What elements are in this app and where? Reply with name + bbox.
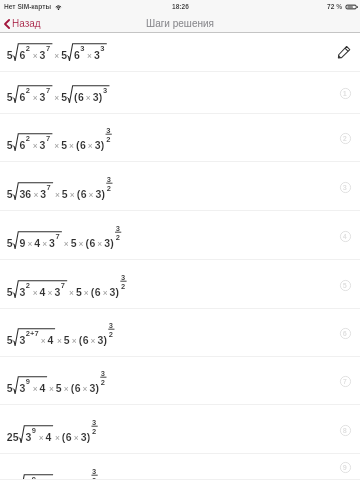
staticText: 2 [343,135,347,142]
button[interactable]: Step 2 details [337,130,353,146]
button[interactable]: Step 9 details [0,454,360,480]
button[interactable]: Edit expression [0,33,360,72]
button[interactable]: Step 5 details [0,260,360,309]
staticText: 6 [343,330,347,337]
button[interactable]: Step 3 details [0,162,360,211]
button[interactable]: Step 7 details [337,373,353,389]
button[interactable]: Step 8 details [337,422,353,438]
staticText: 7 [343,378,347,385]
staticText: 8 [343,427,347,434]
button[interactable]: Step 1 details [337,85,353,101]
staticText: 5 [343,282,347,289]
staticText: Шаги решения [146,18,214,29]
staticText: 4 [343,233,347,240]
staticText: Нет SIM-карты [4,3,52,10]
button[interactable]: Step 3 details [337,179,353,195]
button[interactable]: Назад [0,15,47,32]
staticText: 1 [343,90,347,97]
button[interactable]: Step 2 details [0,114,360,162]
staticText: Назад [12,18,41,29]
staticText: 18:26 [172,3,189,10]
button[interactable]: Step 6 details [0,309,360,357]
button[interactable]: Step 4 details [0,211,360,260]
button[interactable]: Edit expression [334,43,354,63]
staticText: 3 [343,184,347,191]
button[interactable]: Step 9 details [337,459,353,475]
staticText: 72 % [327,3,343,10]
button[interactable]: Step 6 details [337,325,353,341]
button[interactable]: Step 8 details [0,405,360,454]
staticText: 9 [343,464,347,471]
button[interactable]: Step 4 details [337,228,353,244]
button[interactable]: Step 1 details [0,72,360,114]
button[interactable]: Step 7 details [0,357,360,405]
button[interactable]: Step 5 details [337,277,353,293]
